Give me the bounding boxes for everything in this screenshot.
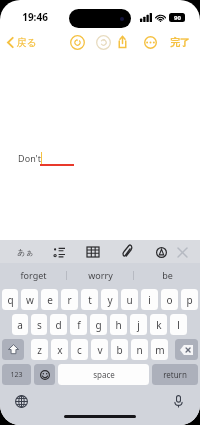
staticText: k xyxy=(156,318,162,332)
staticText: e xyxy=(47,293,53,307)
staticText: s xyxy=(37,318,42,332)
button[interactable]: j xyxy=(130,314,147,335)
staticText: j xyxy=(137,318,140,332)
button[interactable]: t xyxy=(81,289,98,310)
staticText: l xyxy=(177,318,180,332)
staticText: 90 xyxy=(174,14,181,22)
button[interactable]: Undo xyxy=(70,35,85,50)
button[interactable]: Attach xyxy=(117,242,137,262)
staticText: x xyxy=(57,343,63,357)
staticText: v xyxy=(97,343,103,357)
staticText: i xyxy=(148,293,151,307)
button[interactable]: x xyxy=(51,339,68,360)
staticText: forget xyxy=(20,269,47,281)
staticText: z xyxy=(37,343,42,357)
button[interactable]: 完了 xyxy=(168,34,192,51)
staticText: d xyxy=(55,318,62,332)
staticText: c xyxy=(77,343,82,357)
staticText: be xyxy=(162,269,173,281)
button[interactable]: Markup xyxy=(151,242,171,262)
button[interactable]: q xyxy=(2,289,18,310)
button[interactable]: l xyxy=(170,314,187,335)
button[interactable]: y xyxy=(101,289,118,310)
button[interactable]: 123 xyxy=(2,364,31,385)
staticText: a xyxy=(17,318,23,332)
button[interactable]: u xyxy=(121,289,138,310)
button[interactable]: o xyxy=(161,289,178,310)
button[interactable]: s xyxy=(31,314,47,335)
button[interactable]: forget xyxy=(0,263,66,287)
button[interactable]: 戻る xyxy=(7,36,37,49)
button[interactable]: e xyxy=(41,289,58,310)
staticText: g xyxy=(95,318,102,332)
staticText: m xyxy=(155,343,165,357)
staticText: space xyxy=(93,369,115,380)
staticText: 戻る xyxy=(16,36,37,49)
staticText: n xyxy=(136,343,143,357)
staticText: y xyxy=(107,293,113,307)
button[interactable]: v xyxy=(91,339,108,360)
button[interactable]: f xyxy=(70,314,87,335)
staticText: b xyxy=(116,343,123,357)
button[interactable]: z xyxy=(31,339,48,360)
button[interactable]: あぁ xyxy=(14,241,36,263)
staticText: u xyxy=(126,293,133,307)
button[interactable]: Shift xyxy=(2,339,24,360)
button[interactable]: space xyxy=(58,364,149,385)
staticText: f xyxy=(77,318,81,332)
staticText: w xyxy=(26,293,34,307)
button[interactable]: r xyxy=(61,289,78,310)
staticText: 19:46 xyxy=(22,10,48,24)
button[interactable]: Dictation xyxy=(169,392,187,410)
button[interactable]: worry xyxy=(67,263,133,287)
staticText: q xyxy=(7,293,14,307)
button[interactable]: c xyxy=(71,339,88,360)
button[interactable]: Table xyxy=(83,242,103,262)
button[interactable]: i xyxy=(141,289,158,310)
button[interactable]: k xyxy=(150,314,167,335)
button[interactable]: b xyxy=(111,339,128,360)
button[interactable]: Emoji xyxy=(34,364,55,385)
button[interactable]: List xyxy=(49,242,69,262)
button[interactable]: Backspace xyxy=(175,339,198,360)
button[interactable]: a xyxy=(12,314,28,335)
staticText: o xyxy=(166,293,173,307)
staticText: Don't xyxy=(18,152,41,164)
button[interactable]: m xyxy=(151,339,168,360)
button[interactable]: Redo xyxy=(96,35,111,50)
staticText: worry xyxy=(88,269,113,281)
button[interactable]: d xyxy=(50,314,67,335)
staticText: return xyxy=(163,369,187,380)
staticText: h xyxy=(115,318,122,332)
button[interactable]: n xyxy=(131,339,148,360)
button[interactable]: Change keyboard xyxy=(12,392,30,410)
button[interactable]: Share xyxy=(113,33,131,51)
button[interactable]: Close xyxy=(171,241,193,263)
staticText: r xyxy=(67,293,72,307)
button[interactable]: h xyxy=(110,314,127,335)
staticText: 123 xyxy=(10,370,23,380)
button[interactable]: g xyxy=(90,314,107,335)
button[interactable]: return xyxy=(152,364,198,385)
staticText: p xyxy=(186,293,193,307)
staticText: あぁ xyxy=(17,247,34,257)
staticText: t xyxy=(88,293,92,307)
button[interactable]: More xyxy=(141,33,159,51)
button[interactable]: p xyxy=(181,289,198,310)
button[interactable]: w xyxy=(21,289,38,310)
button[interactable]: be xyxy=(134,263,200,287)
